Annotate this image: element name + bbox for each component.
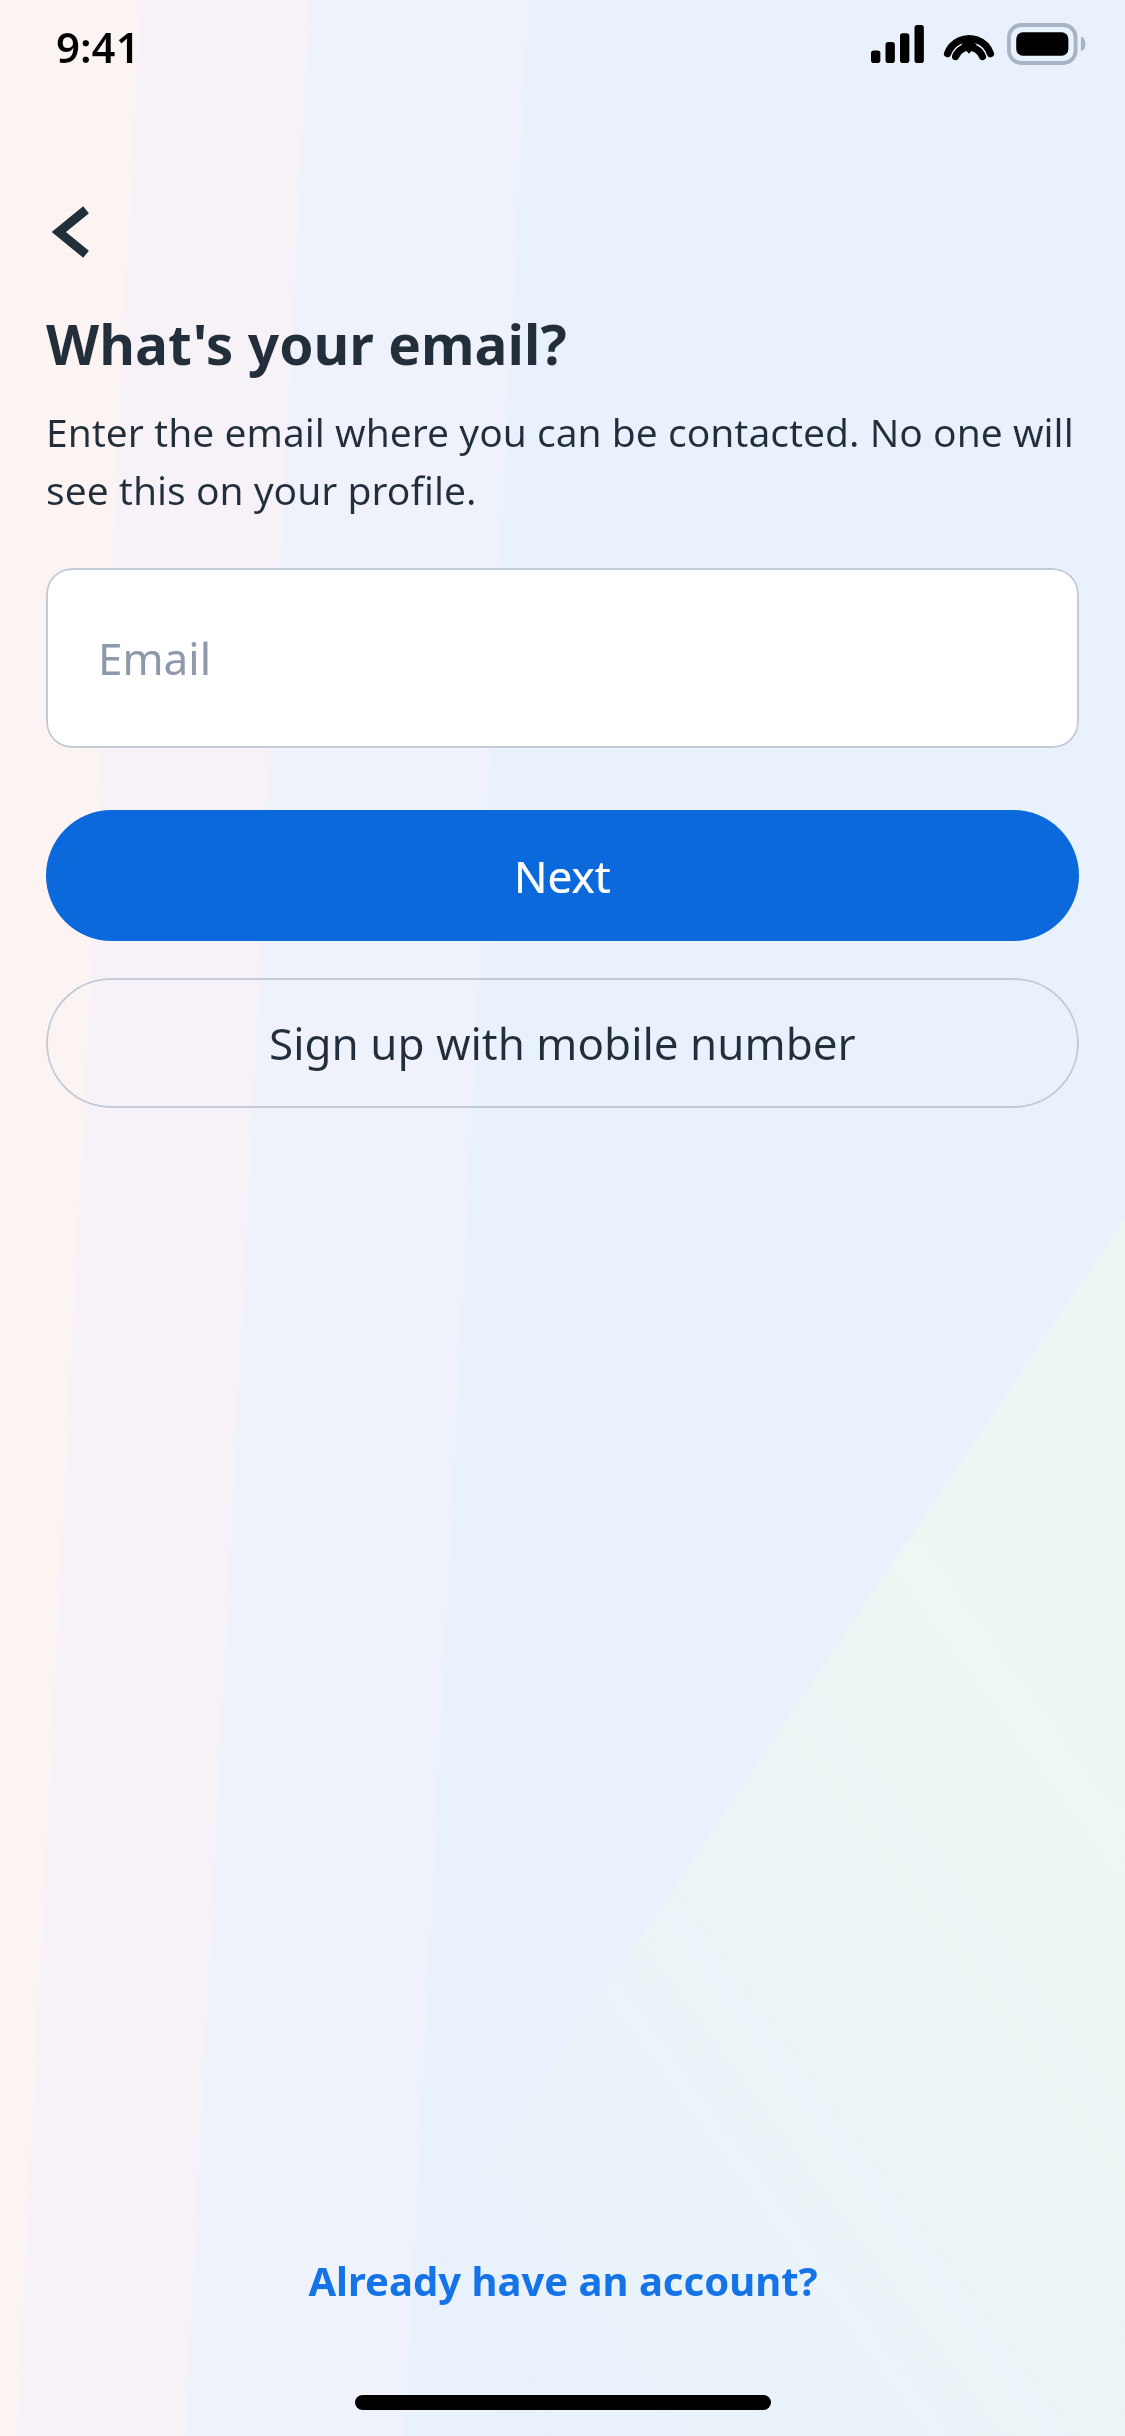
staticText: Email bbox=[98, 628, 211, 688]
staticText: What's your email? bbox=[46, 306, 567, 381]
button[interactable]: Next bbox=[46, 810, 1079, 941]
button[interactable]: Email bbox=[46, 568, 1079, 748]
staticText: Enter the email where you can be contact… bbox=[46, 405, 1083, 516]
staticText: Already have an account? bbox=[308, 2253, 818, 2307]
staticText: Sign up with mobile number bbox=[269, 1013, 856, 1073]
staticText: Next bbox=[514, 846, 611, 906]
button[interactable]: Already have an account? bbox=[0, 2231, 1125, 2329]
button[interactable]: Sign up with mobile number bbox=[46, 978, 1079, 1108]
staticText: 9:41 bbox=[56, 18, 140, 75]
button[interactable]: Back bbox=[24, 184, 120, 280]
